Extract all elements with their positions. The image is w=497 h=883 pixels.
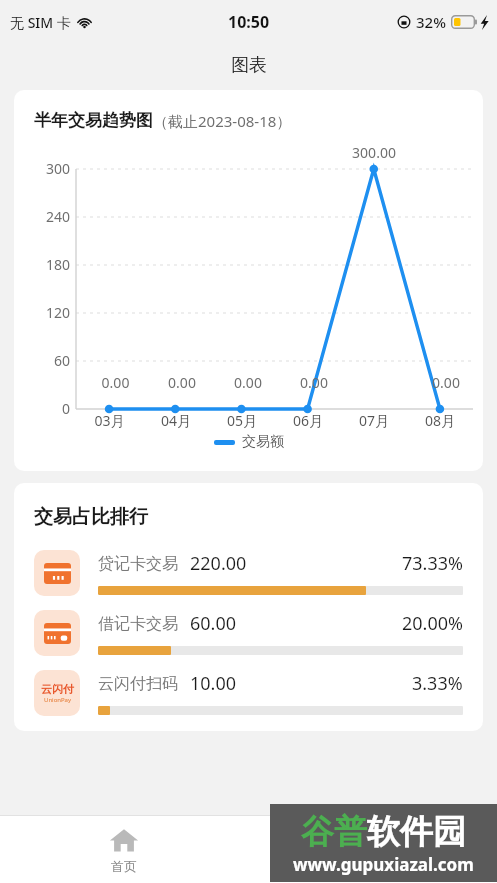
staticText: 借记卡交易 bbox=[98, 614, 178, 634]
button[interactable]: 借记卡交易 bbox=[14, 603, 483, 663]
staticText: 0.00 bbox=[215, 373, 281, 392]
staticText: 220.00 bbox=[190, 551, 247, 576]
staticText: 32% bbox=[416, 12, 446, 32]
staticText: 无 SIM 卡 bbox=[10, 13, 71, 32]
staticText: 180 bbox=[14, 255, 70, 274]
staticText: 交易额 bbox=[242, 433, 284, 451]
staticText: 0 bbox=[14, 399, 70, 418]
staticText: 云闪付扫码 bbox=[98, 674, 178, 694]
staticText: 60.00 bbox=[190, 611, 237, 636]
staticText: 谷普 bbox=[301, 811, 367, 853]
button[interactable]: 首页 bbox=[0, 816, 248, 883]
staticText: 软件园 bbox=[367, 811, 466, 853]
staticText: UnionPay bbox=[44, 696, 72, 704]
staticText: 20.00% bbox=[402, 611, 463, 636]
staticText: 0.00 bbox=[149, 373, 215, 392]
staticText: 10.00 bbox=[190, 671, 237, 696]
staticText: www.gupuxiazal.com bbox=[293, 853, 474, 876]
staticText: 120 bbox=[14, 303, 70, 322]
button[interactable]: 贷记卡交易 bbox=[14, 543, 483, 603]
staticText: 73.33% bbox=[402, 551, 463, 576]
staticText: 04月 bbox=[143, 411, 209, 430]
staticText: 240 bbox=[14, 207, 70, 226]
staticText: 300 bbox=[14, 159, 70, 178]
staticText: 300.00 bbox=[341, 143, 407, 162]
staticText: 07月 bbox=[341, 411, 407, 430]
staticText: 3.33% bbox=[412, 671, 463, 696]
staticText: 半年交易趋势图 bbox=[34, 110, 153, 131]
staticText: 贷记卡交易 bbox=[98, 554, 178, 574]
staticText: 0.00 bbox=[82, 373, 149, 392]
staticText: 0.00 bbox=[281, 373, 347, 392]
staticText: 云闪付 bbox=[41, 682, 74, 696]
staticText: （截止2023-08-18） bbox=[153, 111, 292, 131]
staticText: 03月 bbox=[76, 411, 143, 430]
staticText: 05月 bbox=[209, 411, 275, 430]
staticText: 图表 bbox=[231, 54, 267, 77]
staticText: 10:50 bbox=[228, 11, 270, 33]
staticText: 首页 bbox=[111, 858, 137, 874]
staticText: 图表 bbox=[360, 857, 386, 873]
button[interactable]: 云闪付 bbox=[14, 663, 483, 723]
staticText: 交易占比排行 bbox=[34, 505, 148, 529]
staticText: 06月 bbox=[275, 411, 341, 430]
staticText: 0.00 bbox=[413, 373, 479, 392]
staticText: 08月 bbox=[407, 411, 473, 430]
button[interactable]: 图表 bbox=[248, 816, 497, 883]
staticText: 60 bbox=[14, 351, 70, 370]
